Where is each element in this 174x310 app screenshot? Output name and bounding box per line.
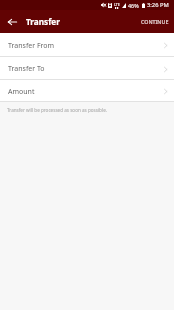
button[interactable]: Amount — [0, 80, 174, 101]
staticText: Transfer From — [8, 41, 55, 51]
staticText: Transfer will be processed as soon as po… — [7, 107, 107, 113]
button[interactable]: Back — [0, 10, 22, 33]
staticText: CONTINUE — [141, 18, 169, 25]
button[interactable]: Transfer From — [0, 33, 174, 56]
button[interactable]: CONTINUE — [135, 13, 174, 30]
staticText: LTE — [114, 2, 120, 7]
button[interactable]: Transfer To — [0, 57, 174, 79]
staticText: 46% — [128, 2, 139, 9]
staticText: Transfer To — [8, 64, 45, 74]
staticText: 3:26 PM — [147, 1, 169, 9]
staticText: Amount — [8, 87, 35, 97]
staticText: Transfer — [26, 16, 60, 27]
